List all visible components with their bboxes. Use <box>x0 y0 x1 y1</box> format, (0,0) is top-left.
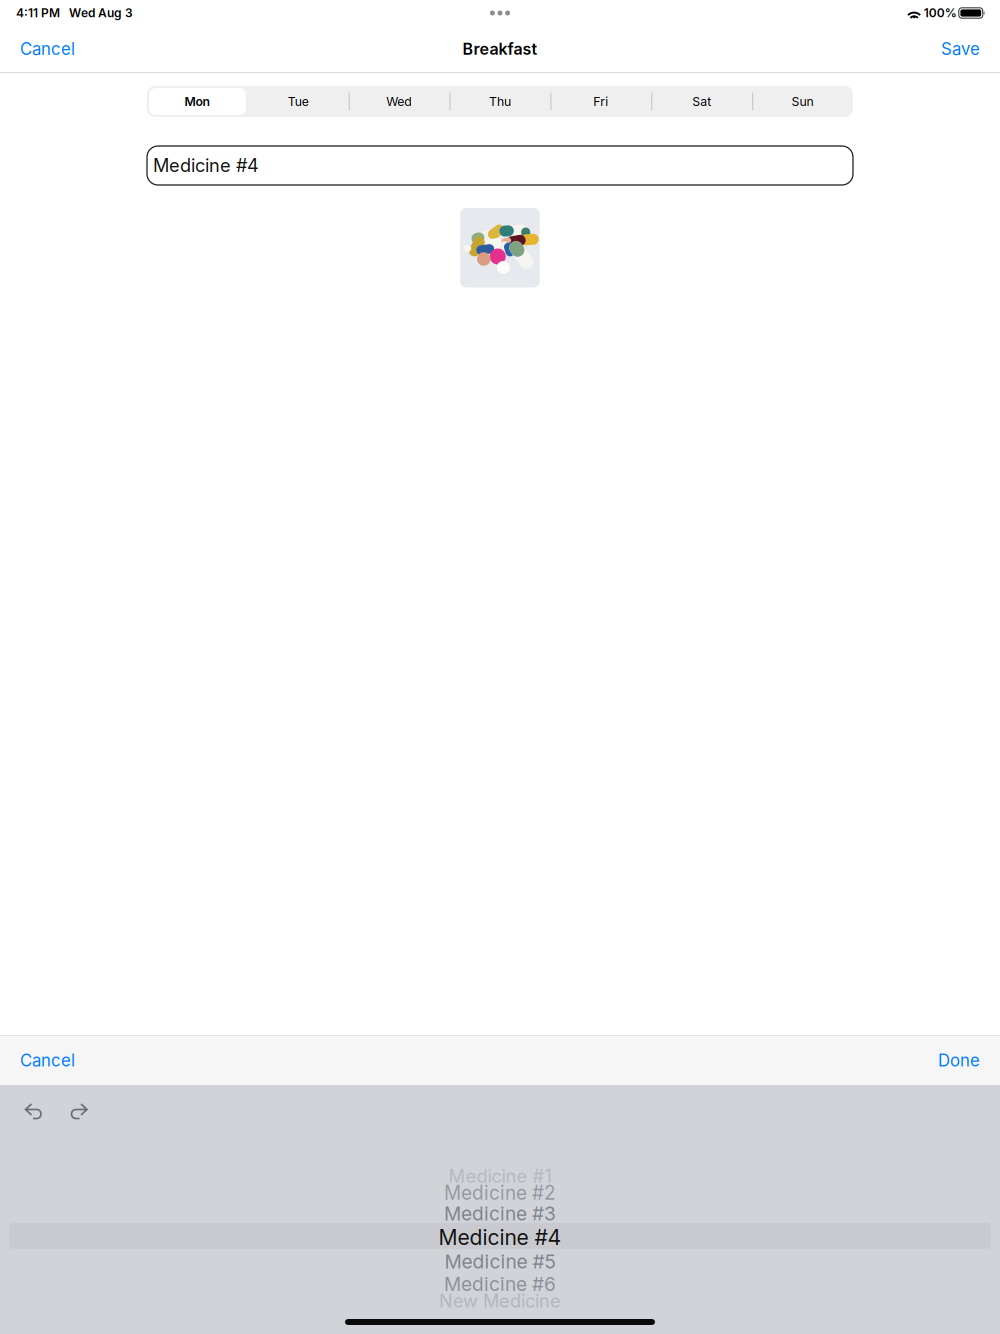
staticText: 4:11 PM <box>16 6 60 20</box>
button[interactable]: Medicine #3 <box>444 1202 556 1225</box>
button[interactable]: Sun <box>752 86 853 117</box>
staticText: Cancel <box>20 1050 75 1071</box>
staticText: Medicine #2 <box>444 1181 556 1204</box>
button[interactable]: Cancel <box>0 1036 91 1085</box>
staticText: Medicine #6 <box>444 1272 556 1296</box>
staticText: Medicine #4 <box>438 1224 561 1250</box>
staticText: Wed Aug 3 <box>60 6 133 20</box>
button[interactable]: New Medicine <box>439 1290 561 1312</box>
staticText: Wed <box>386 94 412 109</box>
staticText: Breakfast <box>462 39 537 59</box>
staticText: Sat <box>692 94 711 109</box>
staticText: Medicine #1 <box>448 1165 551 1187</box>
button[interactable]: Wed <box>349 86 450 117</box>
button[interactable]: Tue <box>248 86 349 117</box>
button[interactable]: Medicine #1 <box>448 1165 551 1187</box>
button[interactable]: Thu <box>450 86 550 117</box>
button[interactable]: Medicine photo <box>460 208 540 287</box>
button[interactable]: Done <box>922 1036 1000 1085</box>
staticText: Save <box>941 39 980 59</box>
staticText: Sun <box>792 94 814 109</box>
button[interactable]: Redo <box>64 1097 94 1127</box>
staticText: Medicine #4 <box>153 154 259 176</box>
button[interactable]: Undo <box>20 1097 49 1127</box>
staticText: Mon <box>184 94 210 109</box>
staticText: Medicine #5 <box>444 1250 555 1273</box>
staticText: Cancel <box>20 39 75 59</box>
button[interactable]: Medicine #5 <box>444 1250 555 1273</box>
staticText: Tue <box>288 94 309 109</box>
staticText: Done <box>938 1050 980 1071</box>
staticText: Fri <box>593 94 608 109</box>
button[interactable]: Medicine #4 <box>438 1224 561 1250</box>
button[interactable]: Cancel <box>0 27 91 71</box>
button[interactable]: Sat <box>651 86 752 117</box>
button[interactable]: Save <box>925 27 1000 71</box>
button[interactable]: Medicine #6 <box>444 1272 556 1296</box>
staticText <box>957 8 959 18</box>
button[interactable]: Medicine #2 <box>444 1181 556 1204</box>
button[interactable]: Mon <box>147 86 248 117</box>
staticText: 100% <box>921 6 957 20</box>
staticText: Thu <box>489 94 511 109</box>
button[interactable]: Fri <box>550 86 651 117</box>
button[interactable]: Medicine #4 <box>147 146 853 185</box>
staticText: New Medicine <box>439 1290 561 1312</box>
staticText: Medicine #3 <box>444 1202 556 1225</box>
